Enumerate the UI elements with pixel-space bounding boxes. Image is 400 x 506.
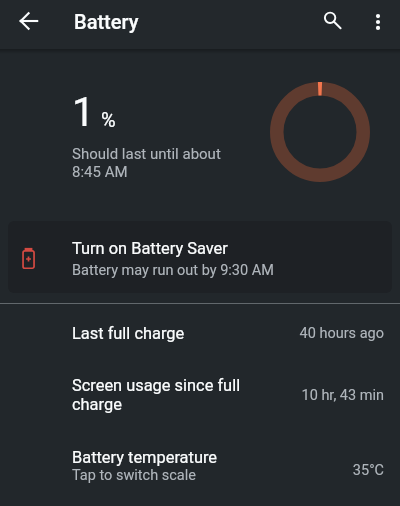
staticText: 35°C — [352, 462, 384, 479]
staticText: Screen usage since full charge — [72, 376, 272, 414]
button[interactable]: Turn on Battery Saver — [8, 221, 392, 293]
staticText: Should last until about 8:45 AM — [72, 145, 221, 180]
staticText: 40 hours ago — [299, 325, 384, 342]
staticText: Battery may run out by 9:30 AM — [72, 262, 274, 279]
button[interactable]: Last full charge — [0, 304, 400, 359]
staticText: Last full charge — [72, 324, 185, 343]
button[interactable]: Screen usage since full charge — [0, 359, 400, 431]
staticText: % — [101, 108, 116, 131]
staticText: 1 — [72, 89, 95, 136]
button[interactable]: More options — [354, 0, 400, 46]
button[interactable]: Back — [5, 0, 53, 45]
staticText: Battery temperature — [72, 448, 218, 467]
staticText: Tap to switch scale — [72, 467, 196, 484]
button[interactable]: Search — [310, 0, 358, 45]
staticText: Turn on Battery Saver — [72, 239, 228, 258]
staticText: Battery — [74, 10, 139, 33]
staticText: 10 hr, 43 min — [301, 387, 384, 404]
button[interactable]: Battery temperature — [0, 431, 400, 503]
